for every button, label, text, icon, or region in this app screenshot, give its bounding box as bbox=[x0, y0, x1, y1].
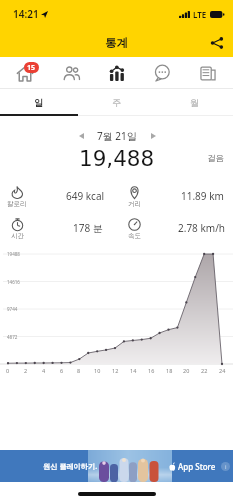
staticText: 19488 bbox=[7, 251, 20, 257]
button[interactable]: Chat bbox=[141, 57, 183, 89]
staticText: LTE bbox=[193, 9, 207, 20]
staticText: 15 bbox=[27, 63, 36, 73]
button[interactable]: Home bbox=[4, 57, 46, 89]
button[interactable]: News bbox=[187, 57, 229, 89]
button[interactable]: Share bbox=[206, 32, 228, 54]
staticText: 12 bbox=[112, 367, 119, 374]
button[interactable]: Next day bbox=[146, 129, 160, 143]
button[interactable]: 속도 bbox=[120, 216, 232, 244]
staticText: 16 bbox=[148, 367, 155, 374]
staticText: 0 bbox=[6, 367, 10, 374]
button[interactable]: 거리 bbox=[120, 184, 232, 212]
button[interactable]: Statistics bbox=[96, 57, 138, 89]
staticText: 649 kcal bbox=[66, 189, 105, 203]
button[interactable]: 주 bbox=[77, 89, 155, 116]
staticText: 주 bbox=[112, 97, 121, 108]
staticText: 거리 bbox=[128, 200, 141, 208]
button[interactable]: Friends bbox=[50, 57, 92, 89]
staticText: 원신 플레이하기. bbox=[43, 461, 98, 471]
staticText: 6 bbox=[60, 367, 64, 374]
staticText: 일 bbox=[34, 97, 43, 108]
staticText: 통계 bbox=[105, 36, 128, 50]
staticText: 11.89 km bbox=[181, 189, 224, 203]
button[interactable]: Ad info bbox=[221, 462, 230, 471]
button[interactable]: Previous day bbox=[74, 129, 88, 143]
button[interactable]: 시간 bbox=[3, 216, 118, 244]
staticText: 20 bbox=[183, 367, 190, 374]
staticText: 속도 bbox=[128, 232, 141, 240]
staticText: 2.78 km/h bbox=[178, 221, 226, 235]
staticText: 시간 bbox=[11, 232, 24, 240]
staticText: 178 분 bbox=[73, 221, 103, 235]
staticText: i bbox=[225, 463, 227, 471]
staticText: 9744 bbox=[7, 306, 18, 312]
staticText: 10 bbox=[94, 367, 101, 374]
staticText: 7월 21일 bbox=[97, 129, 137, 143]
staticText: 4 bbox=[42, 367, 46, 374]
button[interactable]: 칼로리 bbox=[3, 184, 115, 212]
staticText: 24 bbox=[219, 367, 226, 374]
staticText: 14616 bbox=[7, 279, 20, 285]
staticText: 22 bbox=[201, 367, 208, 374]
button[interactable]: 월 bbox=[155, 89, 233, 116]
staticText: 14 bbox=[130, 367, 137, 374]
staticText: App Store bbox=[178, 461, 216, 472]
button[interactable]: 일 bbox=[0, 89, 77, 116]
staticText: 걸음 bbox=[207, 153, 224, 164]
staticText: 월 bbox=[190, 97, 199, 108]
button[interactable]: 원신 플레이하기. bbox=[0, 450, 233, 482]
staticText: 2 bbox=[24, 367, 28, 374]
staticText: 19,488 bbox=[79, 146, 155, 168]
staticText: 4872 bbox=[7, 334, 18, 340]
staticText: 8 bbox=[77, 367, 81, 374]
staticText: 14:21 bbox=[13, 7, 39, 21]
staticText: 칼로리 bbox=[7, 200, 27, 208]
staticText: 18 bbox=[166, 367, 173, 374]
